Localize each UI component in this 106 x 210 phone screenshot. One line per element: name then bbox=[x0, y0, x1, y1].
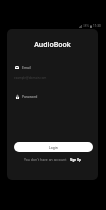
staticText: Sign Up bbox=[70, 158, 81, 162]
staticText: example@domain.com bbox=[14, 76, 47, 80]
button[interactable]: Login bbox=[14, 142, 93, 152]
button[interactable]: Email bbox=[15, 65, 92, 70]
button[interactable]: Sign Up bbox=[70, 158, 81, 162]
staticText: 38% bbox=[83, 24, 89, 28]
staticText: You don't have an account bbox=[24, 157, 67, 162]
staticText: Login bbox=[49, 145, 58, 149]
button[interactable]: Password bbox=[16, 94, 92, 99]
staticText: AudioBook bbox=[7, 40, 98, 50]
staticText: Password bbox=[22, 94, 38, 99]
staticText: 11:30 bbox=[93, 24, 101, 28]
staticText: Email bbox=[22, 65, 31, 70]
